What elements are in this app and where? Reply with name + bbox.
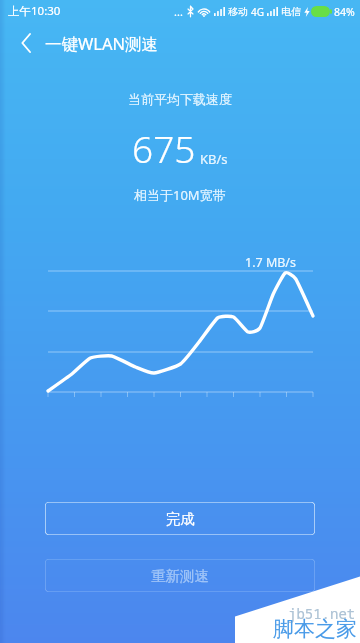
staticText: 电信 — [281, 5, 301, 18]
staticText: 重新测速 — [151, 567, 209, 585]
staticText: 4G — [251, 5, 264, 19]
staticText: 完成 — [166, 510, 195, 528]
staticText: 脚本之家 — [273, 616, 357, 642]
staticText: 上午10:30 — [8, 3, 61, 19]
staticText: 84% — [334, 5, 355, 19]
button[interactable]: 重新测速 — [45, 559, 315, 592]
staticText: KB/s — [200, 150, 228, 168]
button[interactable]: Back — [10, 27, 42, 59]
staticText: 一键WLAN测速 — [45, 32, 159, 55]
staticText: 675 — [132, 123, 196, 173]
staticText: 移动 — [228, 5, 248, 18]
button[interactable]: 完成 — [45, 502, 315, 535]
staticText: 1.7 MB/s — [245, 254, 297, 271]
staticText: jb51.net — [288, 604, 356, 623]
staticText: ... — [174, 4, 183, 19]
staticText: 当前平均下载速度 — [128, 91, 232, 107]
staticText: 相当于10M宽带 — [134, 186, 226, 204]
